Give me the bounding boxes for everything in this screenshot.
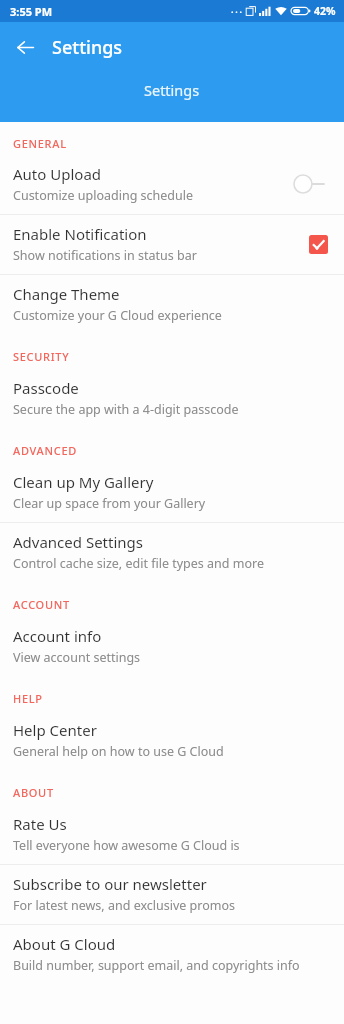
staticText: Rate Us — [13, 814, 67, 834]
staticText: ADVANCED — [13, 443, 77, 458]
staticText: Customize uploading schedule — [13, 187, 194, 204]
staticText: Build number, support email, and copyrig… — [13, 957, 300, 974]
button[interactable]: Change Theme — [0, 275, 344, 334]
staticText: General help on how to use G Cloud — [13, 743, 224, 760]
staticText: Show notifications in status bar — [13, 247, 197, 264]
button[interactable]: Rate Us — [0, 805, 344, 864]
staticText: Subscribe to our newsletter — [13, 874, 207, 894]
button[interactable]: Enable Notification — [0, 215, 344, 274]
staticText: HELP — [13, 691, 43, 706]
button[interactable]: Clean up My Gallery — [0, 463, 344, 522]
button[interactable]: Account info — [0, 617, 344, 676]
staticText: Account info — [13, 626, 102, 646]
staticText: Passcode — [13, 378, 79, 398]
staticText: Auto Upload — [13, 164, 102, 184]
button[interactable]: Settings — [0, 72, 344, 122]
button[interactable]: Enable Notification checkbox — [304, 230, 332, 258]
staticText: Customize your G Cloud experience — [13, 307, 222, 324]
staticText: Clear up space from your Gallery — [13, 495, 206, 512]
button[interactable]: Advanced Settings — [0, 523, 344, 582]
staticText: GENERAL — [13, 136, 67, 151]
staticText: 3:55 PM — [10, 4, 53, 19]
staticText: ACCOUNT — [13, 597, 70, 612]
button[interactable]: Back — [8, 30, 42, 64]
staticText: Settings — [52, 35, 123, 60]
staticText: Tell everyone how awesome G Cloud is — [13, 837, 240, 854]
staticText: Advanced Settings — [13, 532, 143, 552]
button[interactable]: Passcode — [0, 369, 344, 428]
staticText: Change Theme — [13, 284, 120, 304]
button[interactable]: Auto Upload — [0, 155, 344, 214]
button[interactable]: Help Center — [0, 711, 344, 770]
staticText: SECURITY — [13, 349, 70, 364]
staticText: 42% — [314, 4, 336, 18]
staticText: Help Center — [13, 720, 97, 740]
staticText: For latest news, and exclusive promos — [13, 897, 236, 914]
staticText: Clean up My Gallery — [13, 472, 154, 492]
button[interactable]: About G Cloud — [0, 925, 344, 984]
staticText: Control cache size, edit file types and … — [13, 555, 264, 572]
staticText: ABOUT — [13, 785, 54, 800]
staticText: Enable Notification — [13, 224, 147, 244]
staticText: View account settings — [13, 649, 141, 666]
button[interactable]: Auto Upload toggle — [292, 171, 332, 197]
staticText: Settings — [144, 80, 200, 100]
staticText: About G Cloud — [13, 934, 116, 954]
button[interactable]: Subscribe to our newsletter — [0, 865, 344, 924]
staticText: Secure the app with a 4-digit passcode — [13, 401, 239, 418]
